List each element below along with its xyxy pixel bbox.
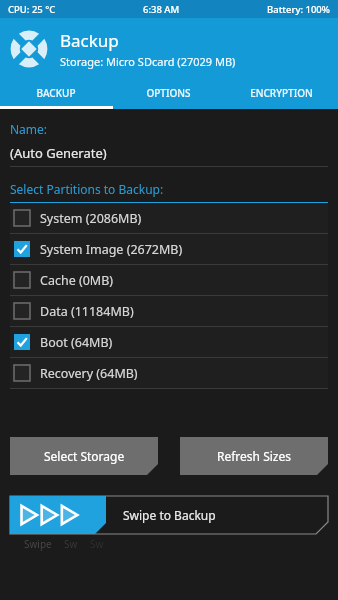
button[interactable]: Swipe to Backup — [10, 496, 328, 534]
staticText: Recovery (64MB) — [40, 365, 138, 382]
staticText: OPTIONS — [146, 86, 191, 100]
staticText: Backup — [60, 29, 119, 52]
button[interactable]: Select Storage — [10, 437, 158, 475]
button[interactable]: Recovery (64MB) — [10, 358, 328, 389]
button[interactable]: Boot (64MB) — [10, 327, 328, 358]
staticText: Select Storage — [44, 448, 125, 464]
button[interactable]: Refresh Sizes — [180, 437, 328, 475]
staticText: Refresh Sizes — [217, 448, 291, 464]
staticText: Select Partitions to Backup: — [10, 181, 164, 197]
staticText: System (2086MB) — [40, 210, 142, 227]
staticText: Cache (0MB) — [40, 272, 114, 289]
staticText: Swipe to Backup — [123, 507, 216, 523]
staticText: ENCRYPTION — [250, 86, 313, 100]
staticText: Boot (64MB) — [40, 334, 113, 351]
staticText: Name: — [10, 121, 48, 137]
button[interactable]: Data (11184MB) — [10, 296, 328, 327]
button[interactable]: Cache (0MB) — [10, 265, 328, 296]
button[interactable]: (Auto Generate) — [10, 144, 328, 167]
button[interactable]: OPTIONS — [112, 80, 225, 106]
staticText: BACKUP — [36, 86, 76, 100]
button[interactable]: ENCRYPTION — [225, 80, 338, 106]
staticText: Sw — [64, 537, 78, 551]
staticText: 6:38 AM — [143, 3, 180, 16]
staticText: System Image (2672MB) — [40, 241, 183, 258]
staticText: (Auto Generate) — [10, 144, 107, 162]
staticText: Storage: Micro SDcard (27029 MB) — [60, 54, 236, 69]
staticText: Battery: 100% — [267, 3, 330, 16]
button[interactable]: System (2086MB) — [10, 203, 328, 234]
staticText: CPU: 25 °C — [8, 3, 56, 16]
button[interactable]: System Image (2672MB) — [10, 234, 328, 265]
staticText: Data (11184MB) — [40, 303, 134, 320]
staticText: Sw — [90, 537, 104, 551]
staticText: Swipe — [24, 537, 52, 551]
button[interactable]: BACKUP — [0, 80, 112, 106]
